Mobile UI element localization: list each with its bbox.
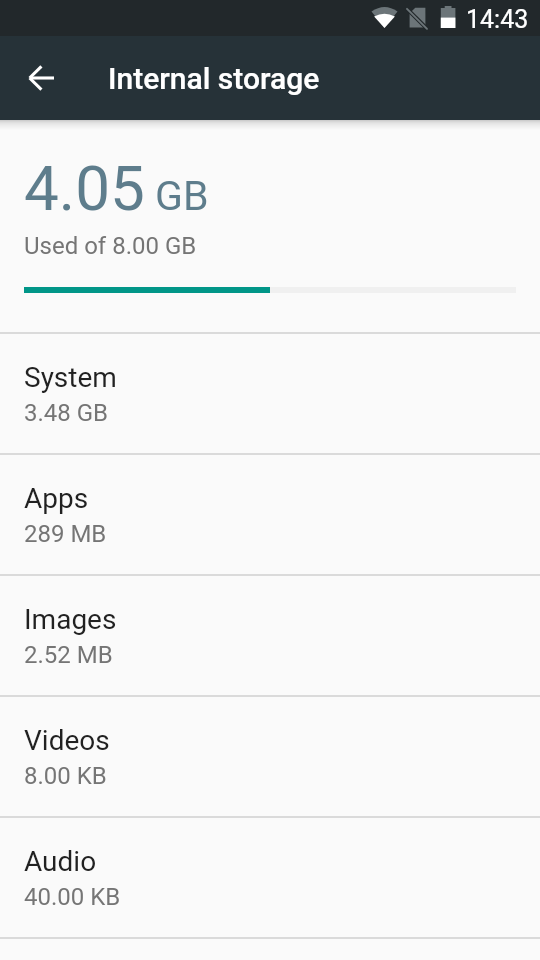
button[interactable]: Videos bbox=[0, 697, 540, 816]
staticText: 2.52 MB bbox=[24, 641, 113, 669]
staticText: Audio bbox=[24, 845, 97, 878]
staticText: System bbox=[24, 361, 117, 394]
staticText: Videos bbox=[24, 724, 110, 757]
staticText: Internal storage bbox=[108, 61, 320, 96]
staticText: Apps bbox=[24, 482, 89, 515]
staticText: 3.48 GB bbox=[24, 399, 109, 427]
staticText: 4.05 bbox=[24, 152, 145, 225]
button[interactable]: Apps bbox=[0, 455, 540, 574]
button[interactable]: Images bbox=[0, 576, 540, 695]
staticText: 14:43 bbox=[466, 5, 529, 34]
button[interactable]: Audio bbox=[0, 818, 540, 937]
staticText: 8.00 KB bbox=[24, 762, 107, 790]
staticText: Used of 8.00 GB bbox=[24, 232, 197, 260]
staticText: Images bbox=[24, 603, 117, 636]
staticText: 289 MB bbox=[24, 520, 107, 548]
button[interactable]: Navigate up bbox=[6, 42, 78, 114]
staticText: GB bbox=[155, 172, 209, 220]
button[interactable]: System bbox=[0, 334, 540, 453]
staticText: 40.00 KB bbox=[24, 883, 121, 911]
